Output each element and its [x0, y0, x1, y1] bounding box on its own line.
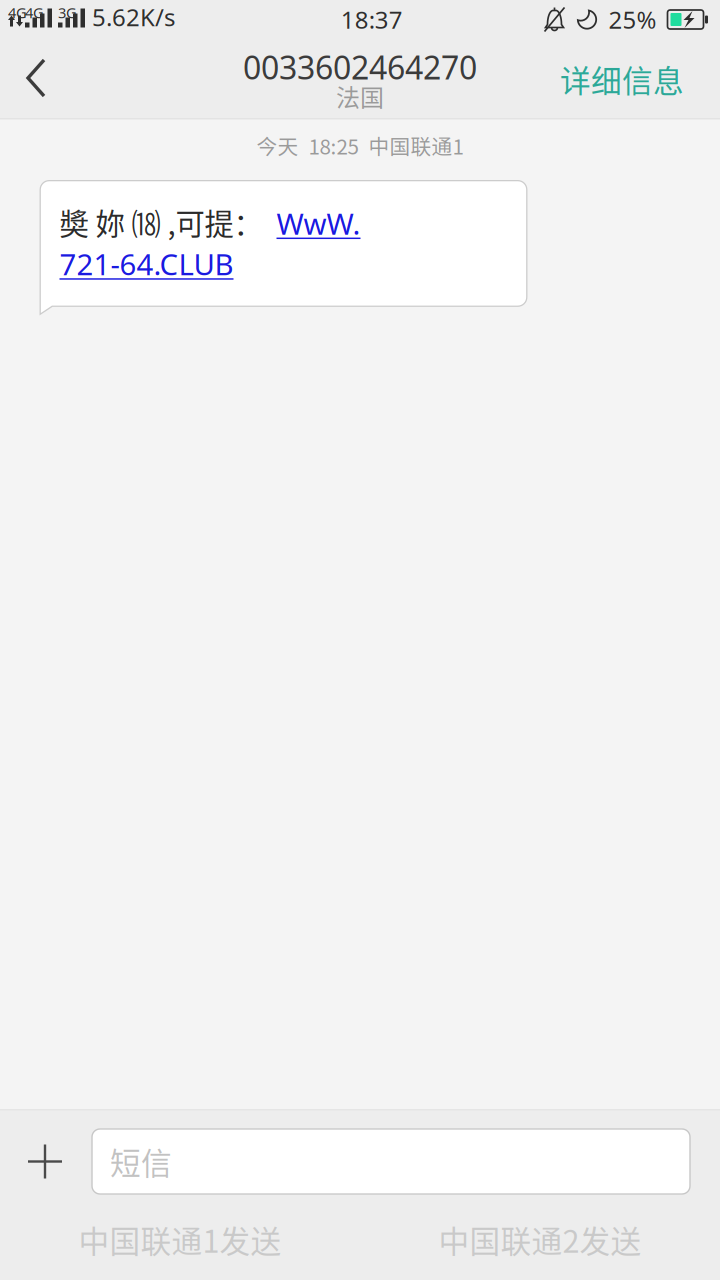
- staticText: 详细信息: [560, 57, 684, 101]
- staticText: 4G: [8, 2, 27, 22]
- button[interactable]: 添加: [0, 1128, 92, 1194]
- staticText: 法国: [336, 79, 384, 113]
- button[interactable]: 返回: [0, 40, 70, 118]
- staticText: 18:37: [341, 3, 403, 36]
- staticText: 721-64.CLUB: [59, 244, 233, 284]
- staticText: 0033602464270: [243, 45, 477, 89]
- staticText: 中国联通1发送: [78, 1217, 281, 1262]
- button[interactable]: 中国联通1发送: [0, 1208, 360, 1270]
- staticText: 中国联通2发送: [438, 1217, 641, 1262]
- staticText: 奬 妳 ⒅ ,可提：: [59, 201, 276, 243]
- button[interactable]: 详细信息: [540, 35, 720, 123]
- staticText: 5.62K/s: [92, 0, 175, 33]
- staticText: 今天 18:25 中国联通1: [256, 130, 463, 160]
- staticText: WwW.: [276, 203, 360, 243]
- button[interactable]: 中国联通2发送: [360, 1208, 720, 1270]
- staticText: 短信: [110, 1139, 172, 1184]
- staticText: 4G: [25, 2, 44, 22]
- staticText: 25%: [608, 3, 656, 36]
- staticText: 3G: [58, 2, 77, 22]
- button[interactable]: 短信: [92, 1129, 690, 1194]
